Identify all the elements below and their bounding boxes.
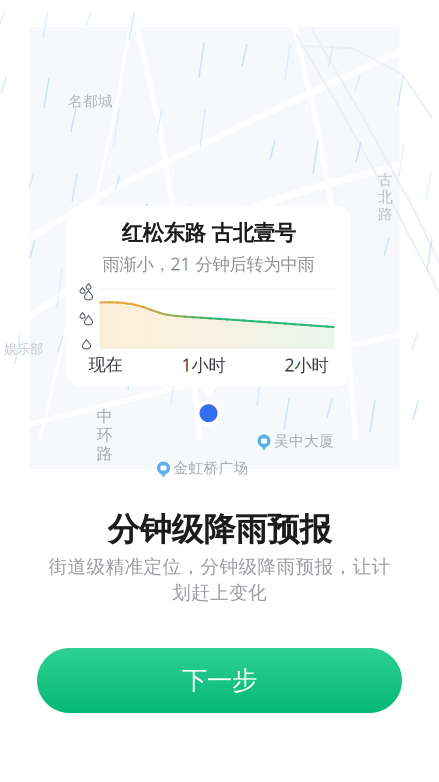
staticText: 娱乐部 — [4, 341, 43, 357]
staticText: 中 — [96, 406, 112, 426]
staticText: 古 — [378, 171, 393, 189]
staticText: 环 — [96, 425, 112, 445]
staticText: 红松东路 古北壹号 — [121, 220, 295, 246]
staticText: 下一步 — [182, 665, 257, 696]
staticText: 街道级精准定位，分钟级降雨预报，让计 — [48, 555, 390, 578]
staticText: 路 — [378, 205, 393, 223]
staticText: 雨渐小，21 分钟后转为中雨 — [102, 252, 314, 275]
staticText: 吴中大厦 — [274, 432, 334, 450]
staticText: 北 — [378, 188, 393, 206]
staticText: 现在 — [88, 354, 122, 375]
staticText: 金虹桥广场 — [173, 459, 248, 477]
staticText: 路 — [96, 444, 112, 463]
staticText: 2小时 — [284, 353, 328, 376]
button[interactable]: 下一步 — [37, 648, 402, 713]
staticText: 分钟级降雨预报 — [107, 510, 331, 549]
staticText: 名都城 — [68, 92, 113, 110]
staticText: 划赶上变化 — [172, 581, 267, 604]
staticText: 1小时 — [181, 353, 225, 376]
